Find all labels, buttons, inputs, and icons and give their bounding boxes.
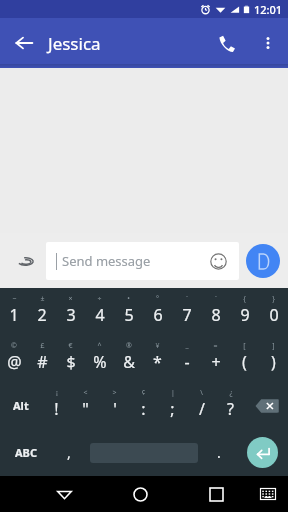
staticText: • <box>127 294 130 304</box>
button[interactable]: € <box>56 335 85 382</box>
button[interactable]: ^ <box>85 335 114 382</box>
staticText: ¥ <box>155 341 160 351</box>
button[interactable]: ¥ <box>143 335 172 382</box>
staticText: | <box>171 388 175 398</box>
button[interactable]: Alt <box>0 382 42 429</box>
button[interactable]: { <box>230 288 259 335</box>
button[interactable]: \ <box>187 382 216 429</box>
staticText: 3 <box>66 304 76 326</box>
staticText: _ <box>185 341 189 351</box>
button[interactable]: Send <box>246 244 280 278</box>
staticText: @ <box>7 351 22 373</box>
staticText: ? <box>227 398 234 420</box>
button[interactable]: ´ <box>201 288 230 335</box>
staticText: ° <box>156 294 159 304</box>
staticText: 2 <box>37 304 47 326</box>
staticText: ! <box>54 398 59 420</box>
button[interactable]: Attach <box>8 244 42 278</box>
staticText: 4 <box>95 304 105 326</box>
staticText: 1 <box>9 304 19 326</box>
staticText: { <box>243 294 246 304</box>
staticText: > <box>112 388 117 398</box>
staticText: ´ <box>215 294 217 304</box>
staticText: = <box>213 341 218 351</box>
button[interactable]: ~ <box>0 288 28 335</box>
button[interactable]: Switch keyboard <box>252 478 284 510</box>
staticText: " <box>82 398 89 420</box>
staticText: ^ <box>97 341 102 351</box>
button[interactable]: Back <box>44 476 84 512</box>
staticText: ÷ <box>97 294 102 304</box>
button[interactable]: Backspace <box>245 382 288 429</box>
button[interactable]: ¿ <box>216 382 245 429</box>
staticText: ] <box>272 341 275 351</box>
staticText: 7 <box>182 304 192 326</box>
button[interactable]: Send message <box>46 242 239 280</box>
staticText: ¢ <box>141 388 146 398</box>
staticText: ; <box>170 398 175 420</box>
staticText: ` <box>186 294 188 304</box>
staticText: ) <box>271 351 276 373</box>
staticText: % <box>93 351 107 373</box>
button[interactable]: , <box>51 429 86 476</box>
staticText: ® <box>126 341 132 351</box>
staticText: [ <box>243 341 246 351</box>
staticText: # <box>37 351 48 373</box>
staticText: Jessica <box>48 32 101 55</box>
button[interactable]: ¡ <box>42 382 71 429</box>
button[interactable]: Space <box>86 429 201 476</box>
button[interactable]: _ <box>172 335 201 382</box>
button[interactable]: £ <box>28 335 56 382</box>
staticText: } <box>272 294 275 304</box>
button[interactable]: . <box>201 429 236 476</box>
staticText: < <box>83 388 88 398</box>
staticText: € <box>68 341 73 351</box>
staticText: ( <box>242 351 247 373</box>
button[interactable]: Recents <box>196 476 236 512</box>
button[interactable]: • <box>114 288 143 335</box>
button[interactable]: [ <box>230 335 259 382</box>
button[interactable]: = <box>201 335 230 382</box>
staticText: / <box>199 398 205 420</box>
staticText: 12:01 <box>254 2 283 17</box>
button[interactable]: ] <box>259 335 288 382</box>
button[interactable]: ± <box>28 288 56 335</box>
staticText: . <box>217 443 221 462</box>
button[interactable]: ¢ <box>129 382 158 429</box>
button[interactable]: Home <box>120 476 160 512</box>
staticText: © <box>11 341 17 351</box>
staticText: * <box>153 351 162 373</box>
staticText: × <box>68 294 73 304</box>
staticText: 9 <box>240 304 250 326</box>
button[interactable]: } <box>259 288 288 335</box>
staticText: ' <box>113 398 117 420</box>
button[interactable]: ` <box>172 288 201 335</box>
button[interactable]: ABC <box>0 429 51 476</box>
button[interactable]: < <box>71 382 100 429</box>
button[interactable]: More options <box>248 23 288 63</box>
button[interactable]: ® <box>114 335 143 382</box>
button[interactable]: Back <box>0 19 48 67</box>
staticText: 5 <box>124 304 134 326</box>
staticText: ± <box>40 294 45 304</box>
staticText: : <box>141 398 146 420</box>
button[interactable]: ° <box>143 288 172 335</box>
staticText: ABC <box>15 445 37 460</box>
staticText: 8 <box>211 304 221 326</box>
staticText: $ <box>66 351 76 373</box>
button[interactable]: > <box>100 382 129 429</box>
staticText: - <box>184 351 190 373</box>
button[interactable]: Enter <box>236 429 288 476</box>
staticText: Alt <box>13 398 29 413</box>
button[interactable]: © <box>0 335 28 382</box>
button[interactable]: ÷ <box>85 288 114 335</box>
staticText: + <box>211 351 221 373</box>
staticText: ¿ <box>229 388 233 398</box>
staticText: & <box>123 351 135 373</box>
button[interactable]: Emoji <box>207 250 229 272</box>
button[interactable]: | <box>158 382 187 429</box>
staticText: 6 <box>153 304 163 326</box>
button[interactable]: Call <box>204 21 248 65</box>
staticText: Send message <box>62 252 151 270</box>
button[interactable]: × <box>56 288 85 335</box>
